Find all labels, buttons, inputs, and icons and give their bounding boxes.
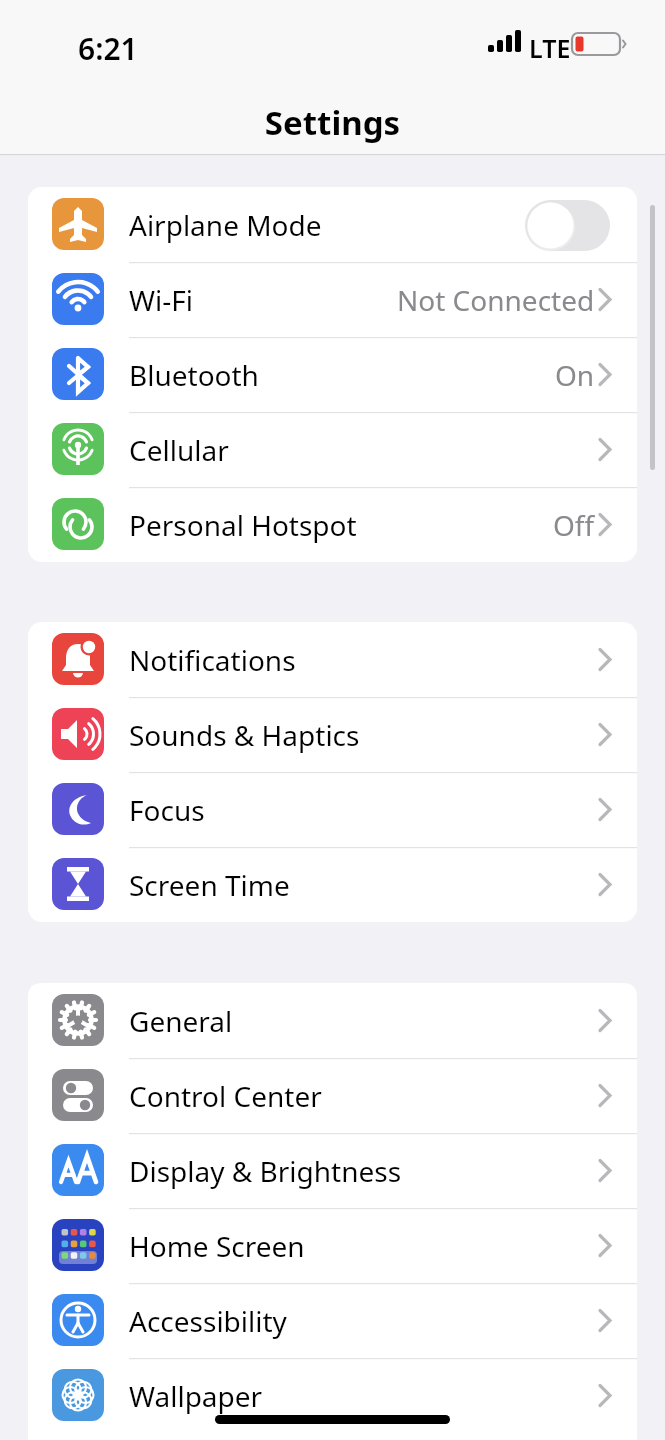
button[interactable]: Wi-Fi (28, 262, 637, 337)
button[interactable]: Notifications (28, 622, 637, 697)
button[interactable]: Cellular (28, 412, 637, 487)
button[interactable]: Focus (28, 772, 637, 847)
button[interactable]: Screen Time (28, 847, 637, 922)
button[interactable]: Wallpaper (28, 1358, 637, 1433)
button[interactable]: Display & Brightness (28, 1133, 637, 1208)
button[interactable]: Accessibility (28, 1283, 637, 1358)
staticText: On (555, 356, 595, 394)
staticText: Off (553, 506, 595, 544)
staticText: Personal Hotspot (129, 506, 357, 544)
button[interactable]: Bluetooth (28, 337, 637, 412)
button[interactable]: Airplane Mode (28, 187, 637, 262)
staticText: Airplane Mode (129, 206, 322, 244)
staticText: Home Screen (129, 1227, 305, 1265)
staticText: Accessibility (129, 1302, 287, 1340)
staticText: Settings (0, 100, 665, 145)
staticText: Display & Brightness (129, 1152, 402, 1190)
staticText: Cellular (129, 431, 229, 469)
staticText: Sounds & Haptics (129, 716, 360, 754)
staticText: 6:21 (78, 28, 138, 69)
staticText: General (129, 1002, 233, 1040)
staticText: Wi-Fi (129, 281, 194, 319)
staticText: Wallpaper (129, 1377, 263, 1415)
staticText: Notifications (129, 641, 296, 679)
staticText: Focus (129, 791, 205, 829)
staticText: Bluetooth (129, 356, 259, 394)
button[interactable]: Control Center (28, 1058, 637, 1133)
button[interactable]: Personal Hotspot (28, 487, 637, 562)
staticText: Control Center (129, 1077, 322, 1115)
staticText: Not Connected (397, 281, 595, 319)
button[interactable]: Sounds & Haptics (28, 697, 637, 772)
button[interactable]: General (28, 983, 637, 1058)
staticText: LTE (529, 31, 571, 65)
staticText: Screen Time (129, 866, 290, 904)
button[interactable]: Home Screen (28, 1208, 637, 1283)
